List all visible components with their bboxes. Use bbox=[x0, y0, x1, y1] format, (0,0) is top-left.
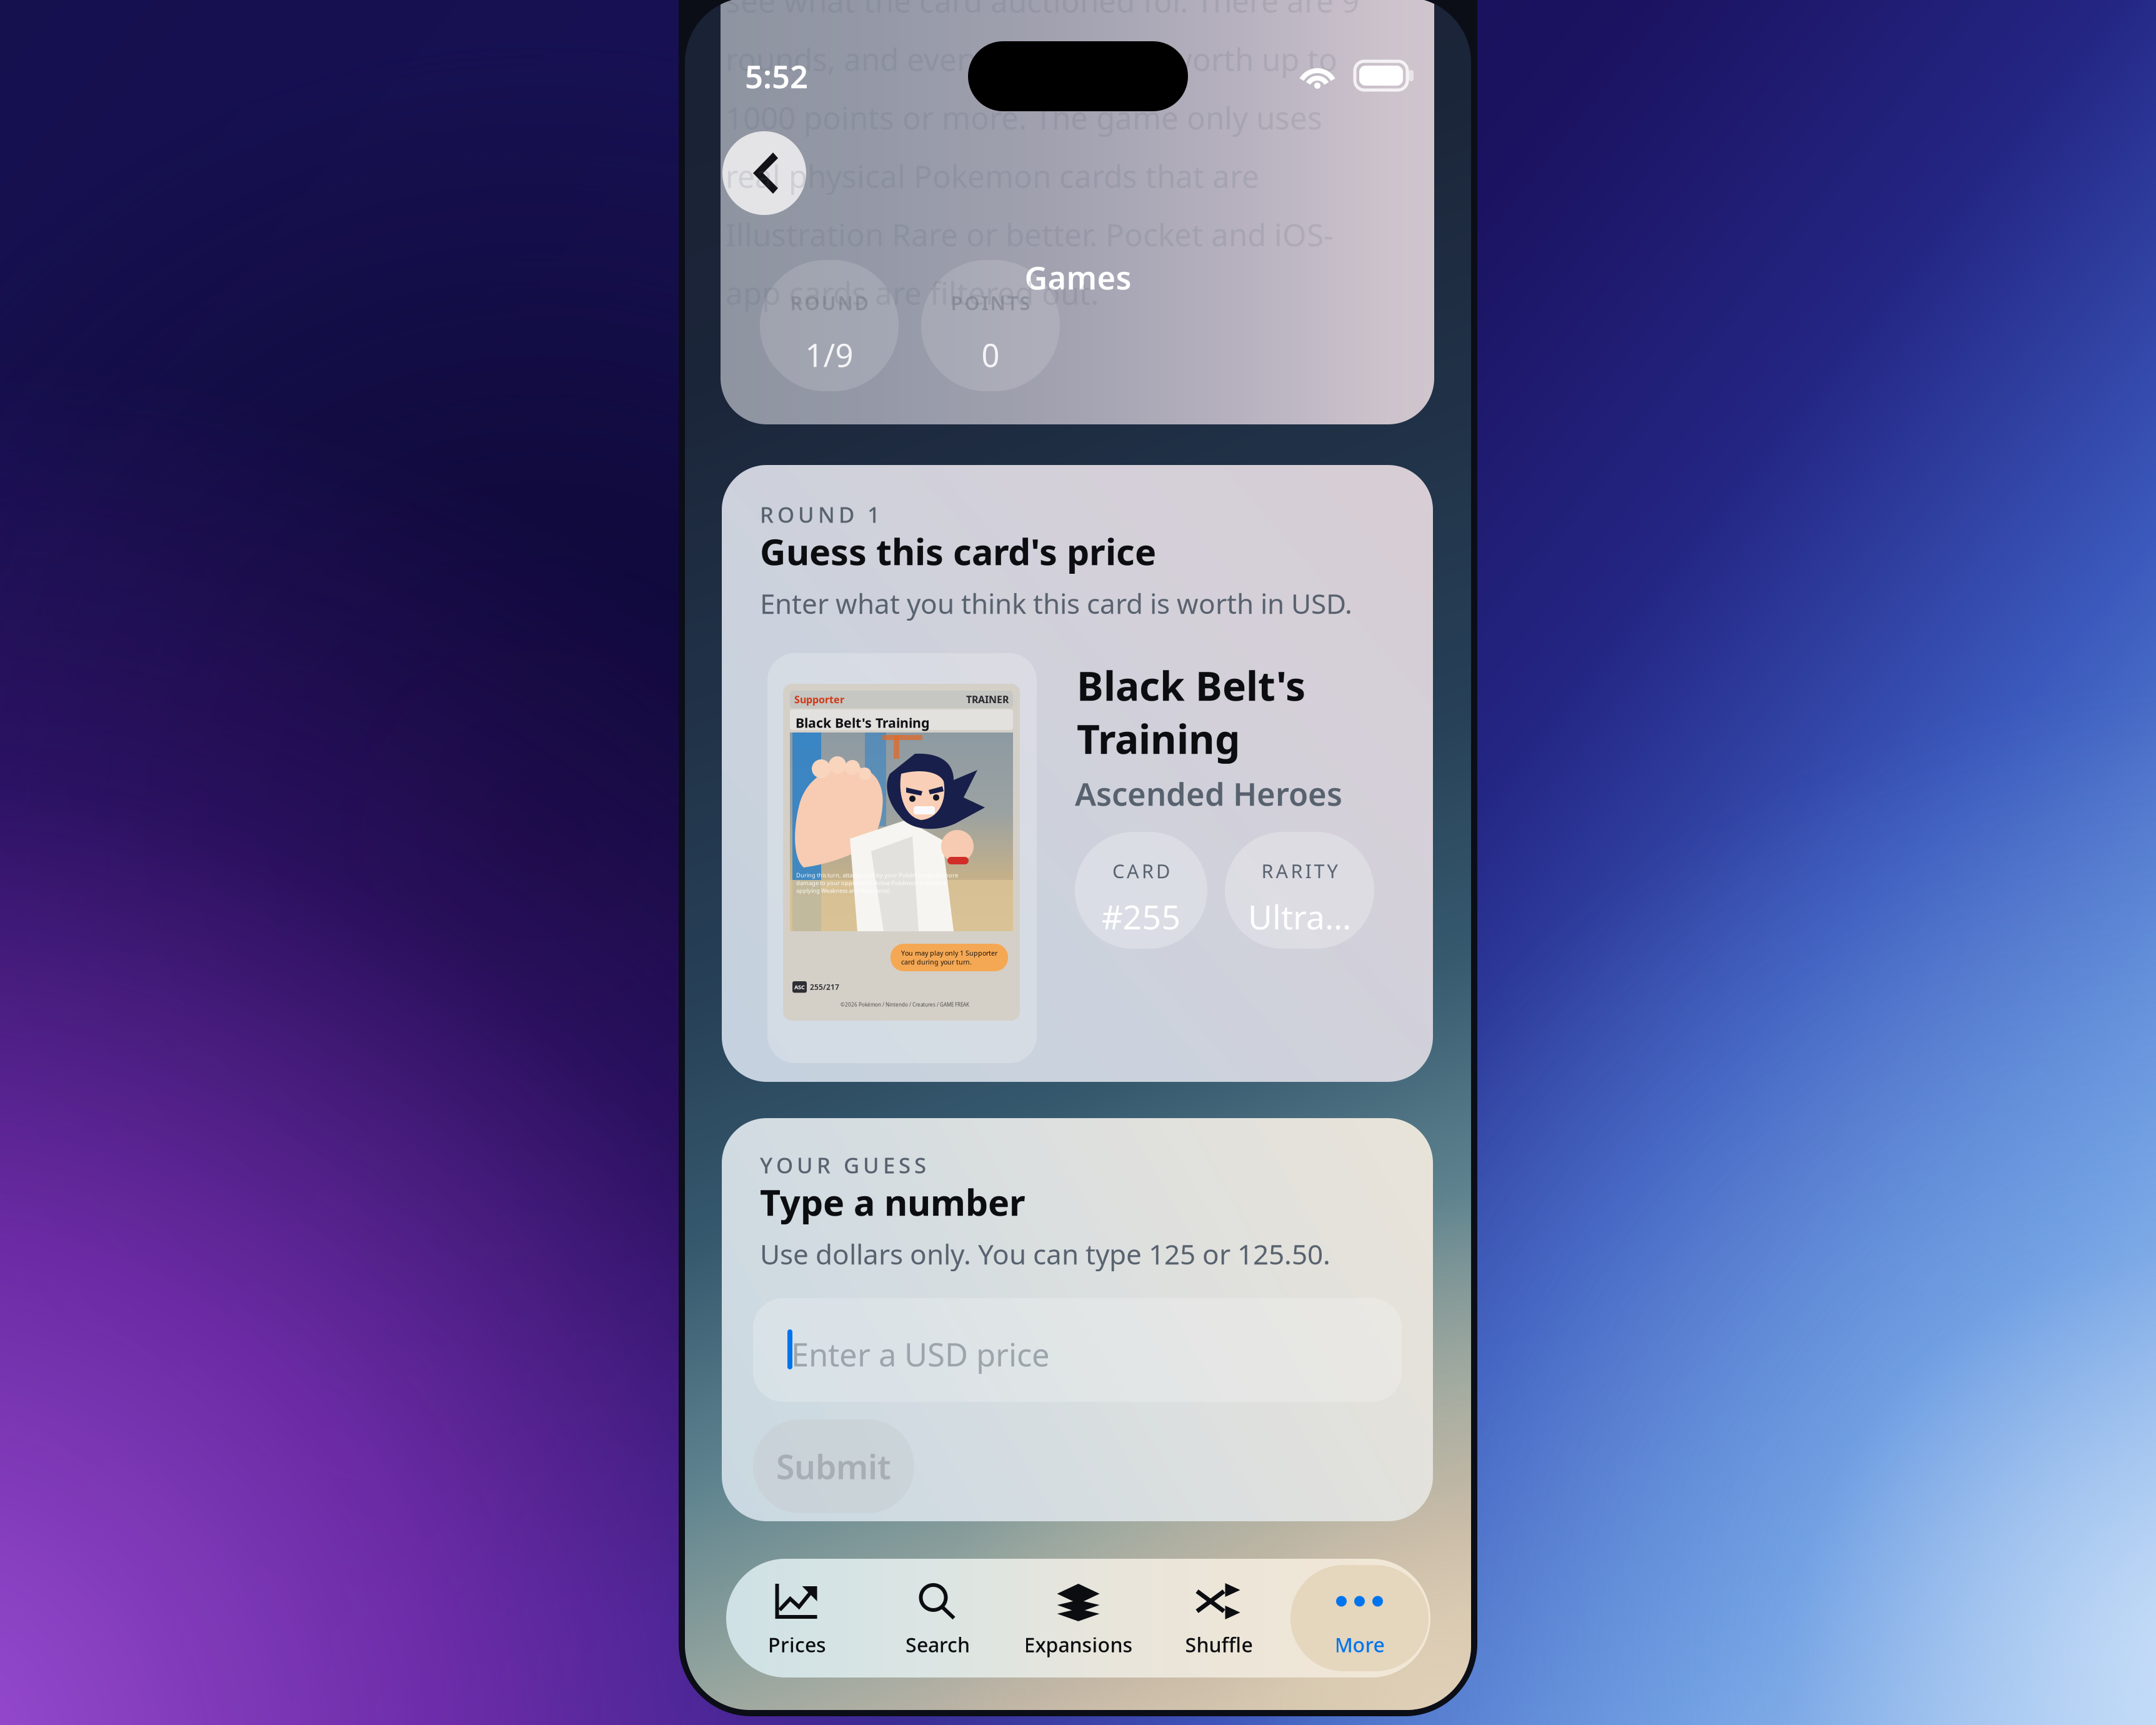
staticText: Supporter bbox=[794, 693, 844, 706]
staticText: Shuffle bbox=[1185, 1631, 1253, 1658]
staticText: 1/9 bbox=[805, 334, 853, 376]
staticText: You may play only 1 Supporter card durin… bbox=[901, 949, 997, 966]
staticText: rounds, and every card can be worth up t… bbox=[726, 38, 1337, 79]
staticText: RARITY bbox=[1261, 858, 1338, 884]
staticText: Prices bbox=[768, 1631, 826, 1658]
staticText: 1000 points or more. The game only uses bbox=[726, 97, 1322, 138]
staticText: Ascended Heroes bbox=[1075, 772, 1342, 815]
staticText: see what the card auctioned for. There a… bbox=[726, 0, 1359, 21]
staticText: real physical Pokemon cards that are bbox=[726, 155, 1259, 196]
staticText: CARD bbox=[1112, 858, 1170, 884]
button[interactable]: Search bbox=[867, 1559, 1008, 1677]
staticText: 0 bbox=[981, 334, 1000, 376]
staticText: Black Belt's bbox=[1077, 659, 1305, 712]
button[interactable]: More bbox=[1289, 1559, 1430, 1677]
staticText: Submit bbox=[776, 1444, 891, 1488]
staticText: Enter what you think this card is worth … bbox=[760, 585, 1352, 621]
staticText: ROUND bbox=[790, 290, 868, 315]
staticText: ASC bbox=[794, 983, 805, 991]
staticText: Use dollars only. You can type 125 or 12… bbox=[760, 1236, 1330, 1272]
staticText: app cards are filtered out. bbox=[726, 272, 1099, 313]
staticText: Black Belt's Training bbox=[796, 714, 929, 731]
staticText: real physical Pokemon cards that are bbox=[726, 155, 1259, 196]
staticText: Games bbox=[1025, 256, 1131, 298]
staticText: app cards are filtered out. bbox=[726, 272, 1099, 313]
staticText: 255/217 bbox=[810, 982, 839, 992]
button[interactable]: Submit bbox=[753, 1419, 914, 1513]
staticText: More bbox=[1335, 1631, 1385, 1658]
staticText: ROUND 1 bbox=[760, 500, 880, 529]
staticText: Search bbox=[906, 1631, 970, 1658]
button[interactable]: Shuffle bbox=[1149, 1559, 1289, 1677]
staticText: TRAINER bbox=[966, 693, 1009, 706]
staticText: 1000 points or more. The game only uses bbox=[726, 97, 1322, 138]
staticText: Guess this card's price bbox=[760, 527, 1156, 575]
staticText: see what the card auctioned for. There a… bbox=[726, 0, 1359, 21]
staticText: During this turn, attacks used by your P… bbox=[796, 871, 958, 894]
button[interactable]: Prices bbox=[727, 1559, 867, 1677]
staticText: Ultra... bbox=[1248, 894, 1351, 939]
staticText: POINTS bbox=[951, 290, 1030, 315]
staticText: Expansions bbox=[1024, 1631, 1133, 1658]
button[interactable]: Back bbox=[722, 131, 806, 215]
staticText: YOUR GUESS bbox=[760, 1151, 926, 1179]
staticText: ©2026 Pokémon / Nintendo / Creatures / G… bbox=[841, 1001, 969, 1008]
button[interactable]: Expansions bbox=[1008, 1559, 1149, 1677]
staticText: Training bbox=[1077, 712, 1240, 765]
staticText: Illustration Rare or better. Pocket and … bbox=[726, 214, 1334, 255]
staticText: #255 bbox=[1101, 894, 1181, 939]
staticText: Enter a USD price bbox=[791, 1333, 1050, 1375]
staticText: rounds, and every card can be worth up t… bbox=[726, 38, 1337, 79]
staticText: Type a number bbox=[760, 1178, 1026, 1226]
staticText: Illustration Rare or better. Pocket and … bbox=[726, 214, 1334, 255]
staticText: 5:52 bbox=[745, 55, 808, 97]
